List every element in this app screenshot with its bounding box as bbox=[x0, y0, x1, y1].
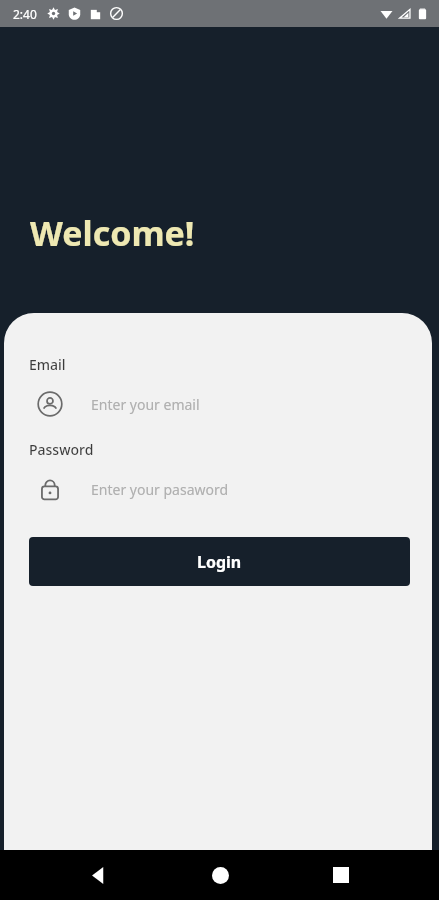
button[interactable]: Home bbox=[196, 851, 244, 899]
button[interactable]: Recents bbox=[317, 851, 365, 899]
other: Password bbox=[37, 476, 63, 502]
button[interactable]: Email bbox=[29, 384, 410, 424]
staticText: Enter your pasaword bbox=[91, 480, 229, 499]
button[interactable]: Back bbox=[74, 851, 122, 899]
staticText: Welcome! bbox=[30, 210, 195, 256]
staticText: Email bbox=[29, 355, 66, 374]
button[interactable]: Login bbox=[29, 537, 410, 586]
staticText: Login bbox=[197, 551, 242, 573]
staticText: Password bbox=[29, 440, 94, 459]
staticText: 2:40 bbox=[13, 6, 37, 22]
button[interactable]: Password bbox=[29, 469, 410, 509]
other: Email bbox=[37, 391, 63, 417]
staticText: Enter your email bbox=[91, 395, 200, 414]
